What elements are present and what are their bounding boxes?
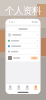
button[interactable]	[6, 54, 40, 61]
button[interactable]	[6, 44, 40, 49]
staticText: PERSONAL PROFILE	[11, 17, 35, 21]
staticText: 个人资料	[5, 5, 41, 16]
staticText: 9:41	[8, 20, 15, 24]
button[interactable]: Home	[6, 84, 14, 91]
button[interactable]: Profile	[31, 84, 40, 91]
button[interactable]: Discover	[14, 84, 23, 91]
button[interactable]	[6, 49, 40, 54]
button[interactable]: Messages	[23, 84, 31, 91]
button[interactable]	[6, 38, 40, 43]
button[interactable]	[6, 32, 40, 38]
